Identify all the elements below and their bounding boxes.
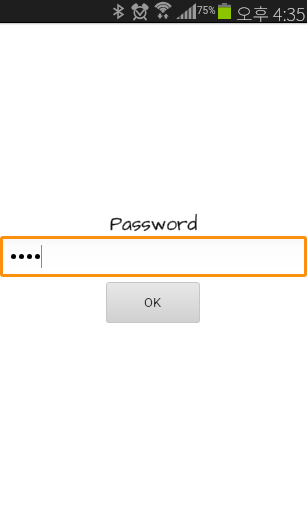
button[interactable] [3, 239, 304, 274]
staticText: 오후 4:35 [236, 0, 306, 22]
button[interactable]: OK [106, 282, 200, 323]
staticText: 75% [197, 5, 216, 17]
staticText: OK [144, 295, 162, 310]
staticText: Password [110, 211, 198, 237]
staticText: Password [110, 211, 198, 237]
